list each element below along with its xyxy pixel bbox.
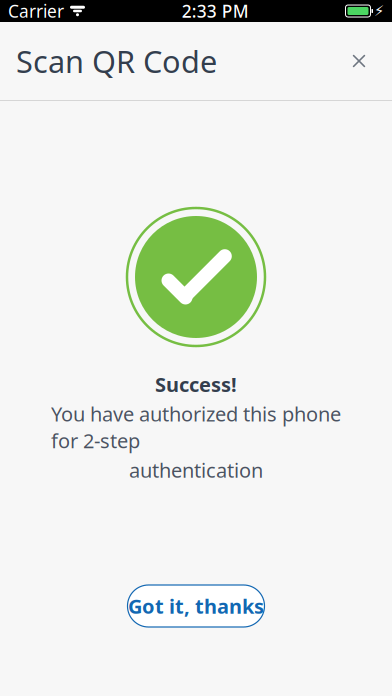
staticText: Success!: [155, 371, 237, 398]
button[interactable]: Close: [334, 36, 384, 86]
staticText: Carrier: [8, 0, 64, 22]
staticText: Got it, thanks: [128, 593, 264, 619]
staticText: You have authorized this phone for 2-ste…: [51, 401, 341, 454]
staticText: authentication: [129, 457, 263, 483]
button[interactable]: Got it, thanks: [127, 585, 264, 627]
staticText: ⚡︎: [374, 3, 384, 19]
staticText: Scan QR Code: [16, 41, 217, 81]
staticText: 2:33 PM: [182, 0, 249, 22]
